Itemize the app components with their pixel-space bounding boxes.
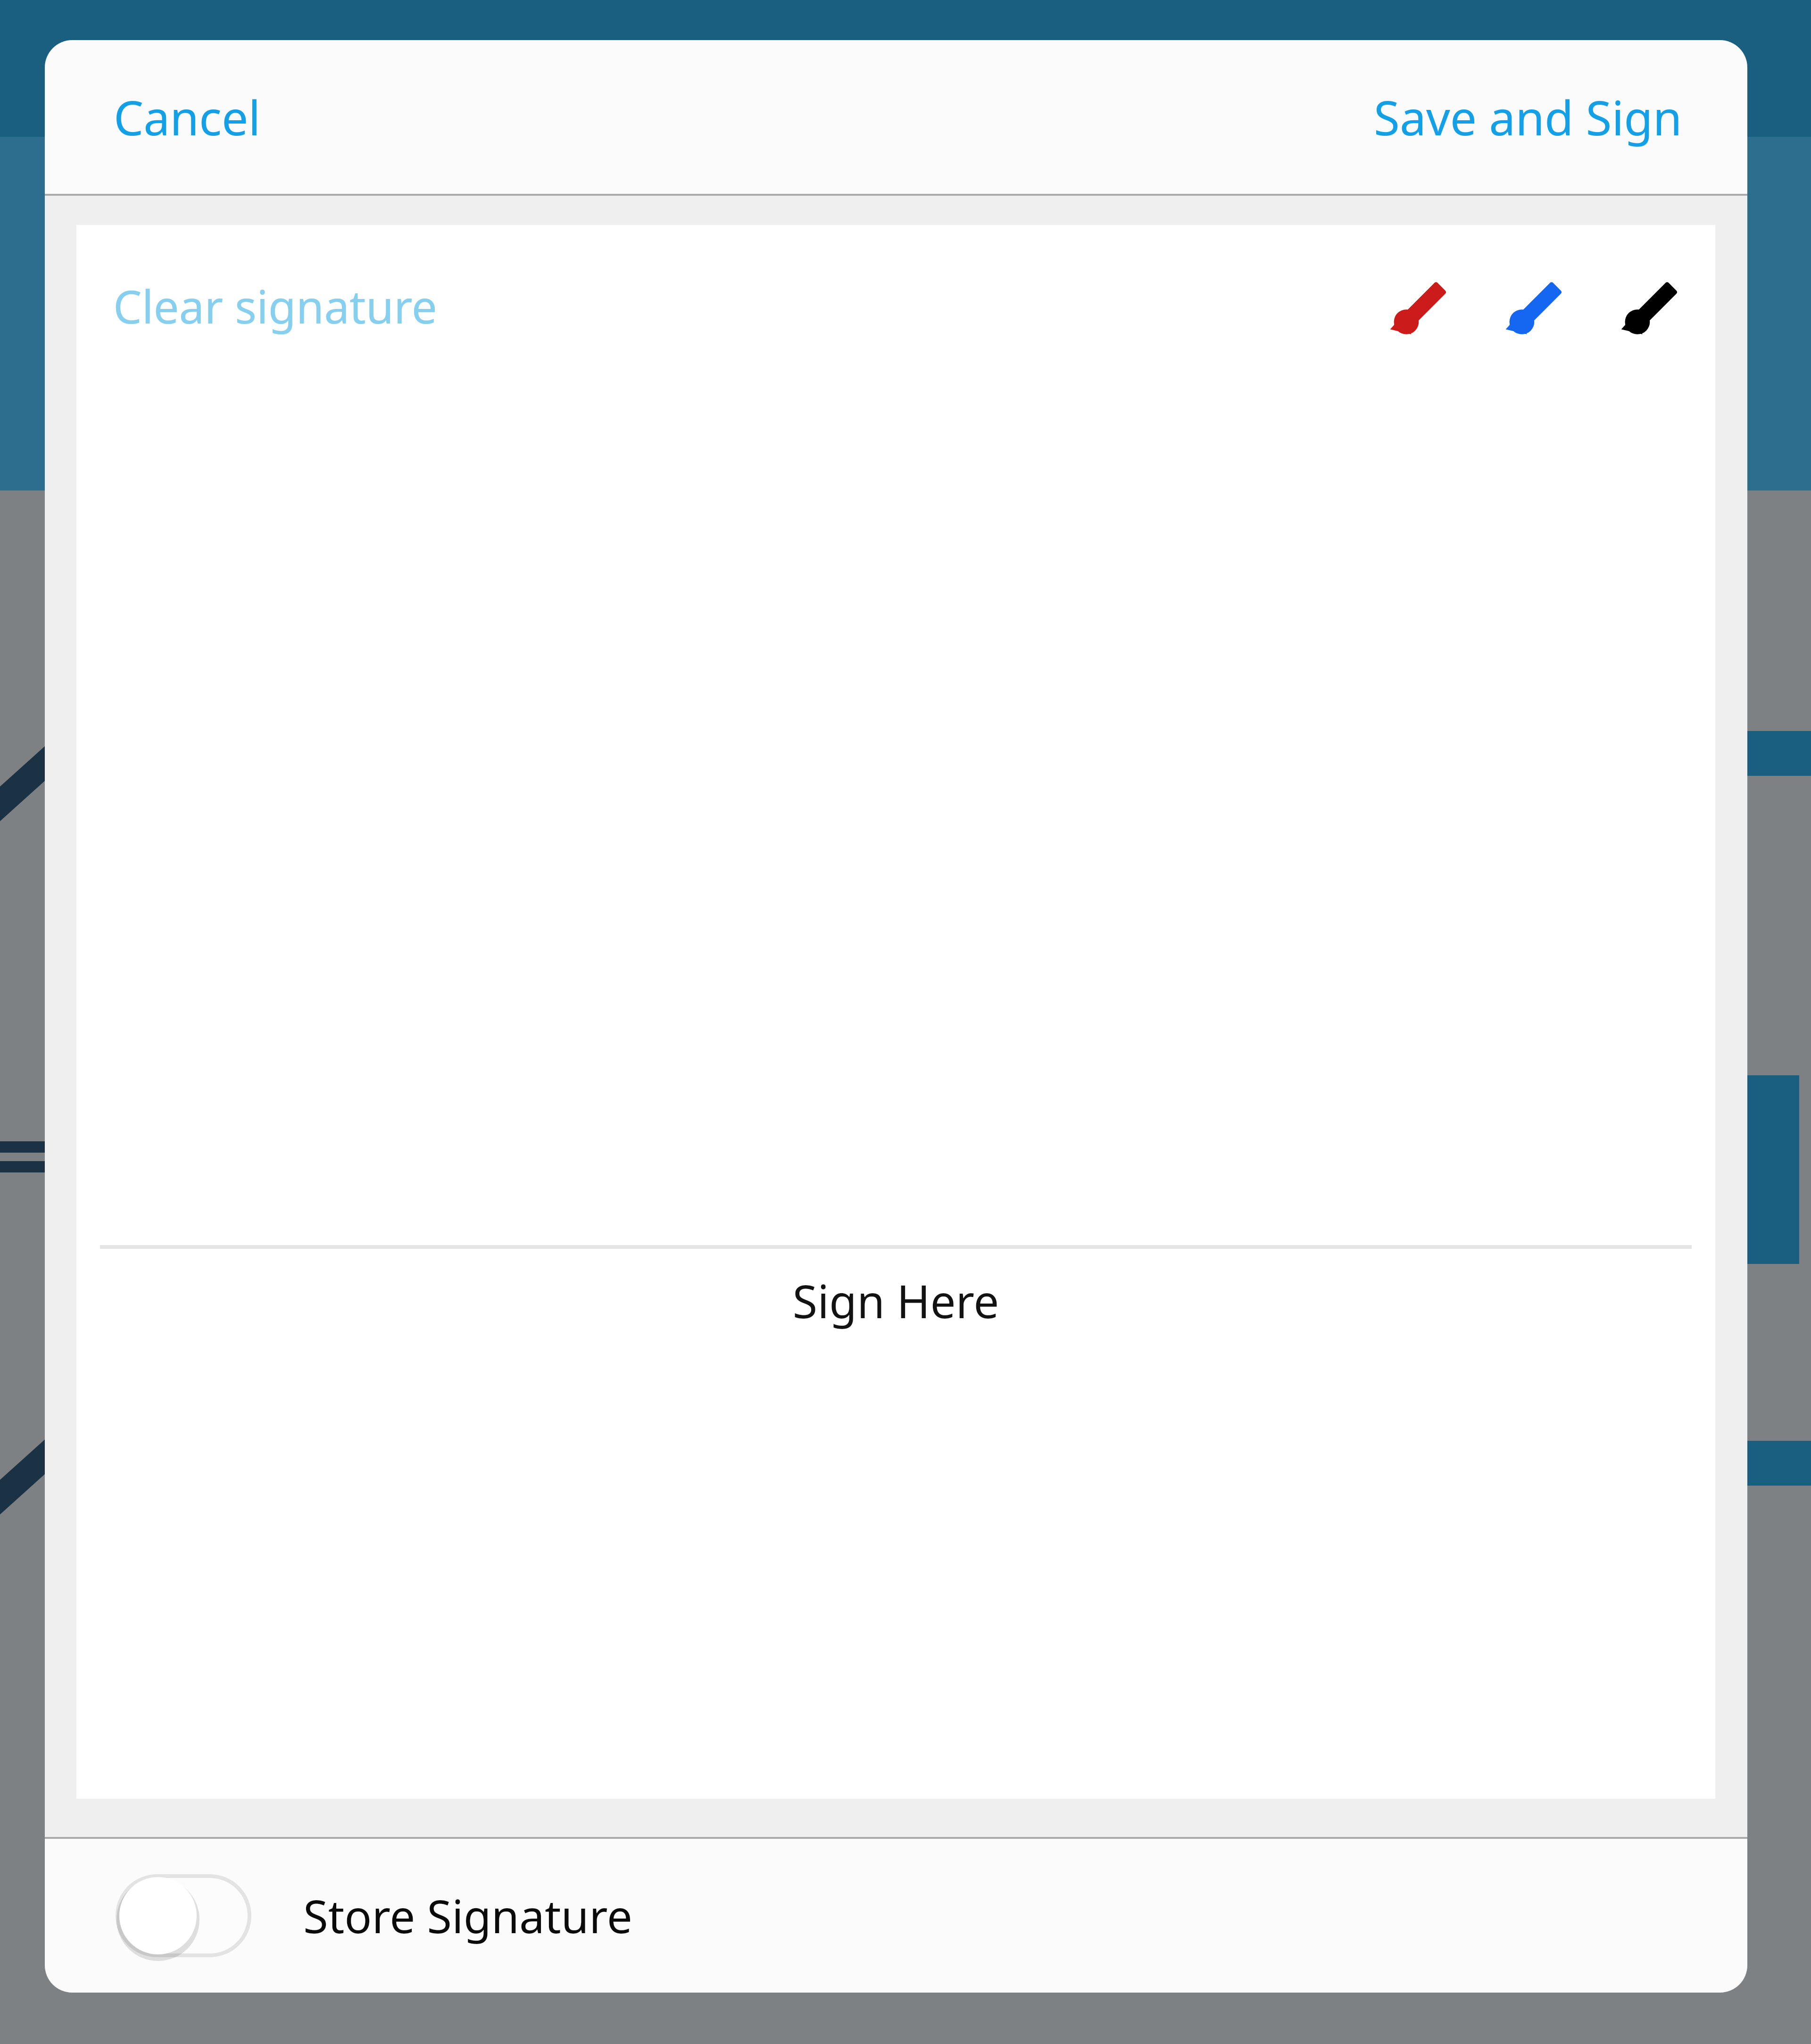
button[interactable]: Store Signature bbox=[45, 1839, 1747, 1992]
staticText: Store Signature bbox=[303, 1885, 632, 1946]
staticText: Cancel bbox=[114, 85, 261, 149]
button[interactable]: Clear signature bbox=[104, 266, 447, 346]
button[interactable]: Black brush bbox=[1604, 259, 1701, 356]
staticText: Save and Sign bbox=[1374, 85, 1682, 149]
staticText: Sign Here bbox=[76, 1270, 1715, 1331]
button[interactable]: Cancel bbox=[101, 72, 273, 162]
other: Store Signature bbox=[116, 1874, 251, 1957]
staticText: Clear signature bbox=[113, 275, 437, 337]
button[interactable]: Blue brush bbox=[1489, 259, 1586, 356]
button[interactable]: Save and Sign bbox=[1362, 72, 1695, 162]
button[interactable]: Red brush bbox=[1373, 259, 1470, 356]
